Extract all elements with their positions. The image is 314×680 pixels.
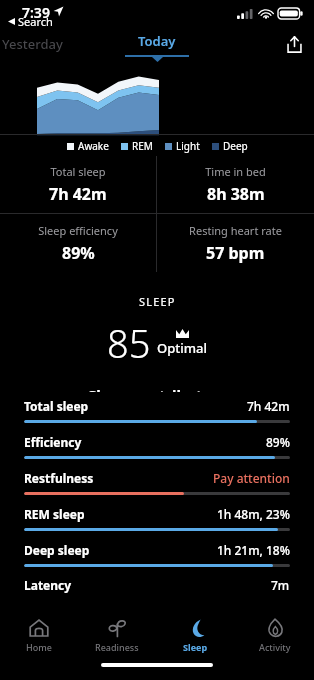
staticText: Restfulness [24, 470, 213, 486]
staticText: Readiness [95, 641, 139, 653]
staticText: Search [18, 14, 53, 29]
staticText: Deep sleep [24, 542, 217, 558]
button[interactable]: Yesterday [0, 31, 75, 57]
staticText: Efficiency [24, 434, 266, 450]
staticText: Total sleep [24, 398, 247, 414]
staticText: 8h 38m [207, 183, 265, 205]
staticText: Light [176, 139, 200, 153]
staticText: Awake [78, 139, 109, 153]
button[interactable]: Readiness [78, 612, 156, 658]
staticText: 7:39 [22, 3, 50, 22]
staticText: Sleep contributors [88, 385, 226, 392]
staticText: 1h 21m, 18% [217, 542, 290, 558]
button[interactable]: Total sleep [24, 392, 290, 428]
button[interactable]: Sleep [156, 612, 235, 658]
staticText: Deep [223, 139, 248, 153]
button[interactable]: Total sleep [0, 156, 156, 213]
staticText: Resting heart rate [189, 223, 282, 238]
button[interactable]: Efficiency [24, 428, 290, 464]
staticText: 89% [62, 242, 95, 264]
staticText: Activity [259, 641, 291, 653]
staticText: REM sleep [24, 506, 217, 522]
staticText: Home [26, 641, 52, 653]
button[interactable]: Activity [235, 612, 314, 658]
staticText: Time in bed [205, 164, 266, 179]
staticText: 1h 48m, 23% [217, 506, 290, 522]
button[interactable]: Home [0, 612, 78, 658]
staticText: 7h 42m [49, 183, 107, 205]
button[interactable]: Deep sleep [24, 536, 290, 572]
staticText: Today [138, 32, 176, 50]
staticText: Sleep [183, 641, 208, 653]
staticText: 89% [266, 434, 290, 450]
staticText: 57 bpm [206, 242, 265, 264]
staticText: Latency [24, 577, 271, 593]
button[interactable]: Resting heart rate [157, 214, 314, 272]
button[interactable]: Latency [24, 577, 290, 593]
button[interactable]: Restfulness [24, 464, 290, 500]
staticText: Pay attention [213, 470, 290, 486]
button[interactable]: Time in bed [157, 156, 314, 213]
button[interactable]: Today [125, 32, 189, 62]
button[interactable]: Share [275, 32, 314, 57]
staticText: REM [132, 139, 153, 153]
staticText: Optimal [157, 339, 207, 357]
staticText: 7h 42m [247, 398, 290, 414]
button[interactable]: REM sleep [24, 500, 290, 536]
staticText: 85 [107, 317, 151, 369]
button[interactable]: Sleep efficiency [0, 214, 156, 272]
staticText: Total sleep [50, 164, 106, 179]
staticText: 7m [271, 577, 290, 593]
staticText: Sleep efficiency [38, 223, 118, 238]
staticText: SLEEP [139, 294, 176, 309]
